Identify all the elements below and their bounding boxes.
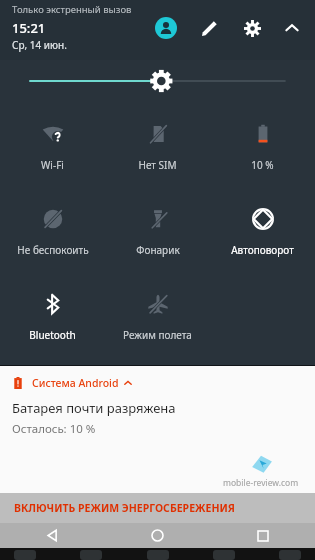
button[interactable]: Brightness (0, 60, 315, 102)
button[interactable]: Collapse (279, 15, 305, 41)
staticText: Режим полета (123, 328, 192, 342)
staticText: Wi-Fi (41, 158, 64, 172)
staticText: 10 % (251, 158, 274, 172)
button[interactable]: Back (0, 523, 105, 548)
button[interactable]: Home (105, 523, 210, 548)
staticText: Не беспокоить (17, 243, 89, 257)
staticText: Автоповорот (231, 243, 294, 257)
staticText: mobile-review.com (223, 477, 299, 489)
button[interactable]: User profile (155, 17, 177, 39)
button[interactable]: Не беспокоить (0, 187, 105, 272)
button[interactable]: Edit tiles (197, 15, 223, 41)
button[interactable]: Wi-Fi (0, 102, 105, 187)
staticText: Батарея почти разряжена (12, 399, 176, 417)
button[interactable]: Нет SIM (105, 102, 210, 187)
button[interactable]: Bluetooth (0, 272, 105, 357)
button[interactable]: Фонарик (105, 187, 210, 272)
button[interactable]: Settings (239, 15, 265, 41)
button[interactable]: ВКЛЮЧИТЬ РЕЖИМ ЭНЕРГОСБЕРЕЖЕНИЯ (0, 493, 315, 523)
button[interactable]: 10 % (210, 102, 315, 187)
button[interactable]: Система Android (0, 366, 315, 493)
button[interactable]: Recents (210, 523, 315, 548)
button[interactable]: Автоповорот (210, 187, 315, 272)
staticText: Только экстренный вызов (12, 3, 132, 16)
staticText: Осталось: 10 % (12, 421, 96, 437)
staticText: Нет SIM (138, 158, 177, 172)
staticText: ВКЛЮЧИТЬ РЕЖИМ ЭНЕРГОСБЕРЕЖЕНИЯ (14, 501, 235, 515)
staticText: Система Android (32, 376, 119, 390)
button[interactable]: Режим полета (105, 272, 210, 357)
staticText: Ср, 14 июн. (12, 38, 67, 52)
staticText: 15:21 (12, 19, 46, 37)
staticText: Bluetooth (29, 328, 76, 342)
staticText: Фонарик (136, 243, 180, 257)
